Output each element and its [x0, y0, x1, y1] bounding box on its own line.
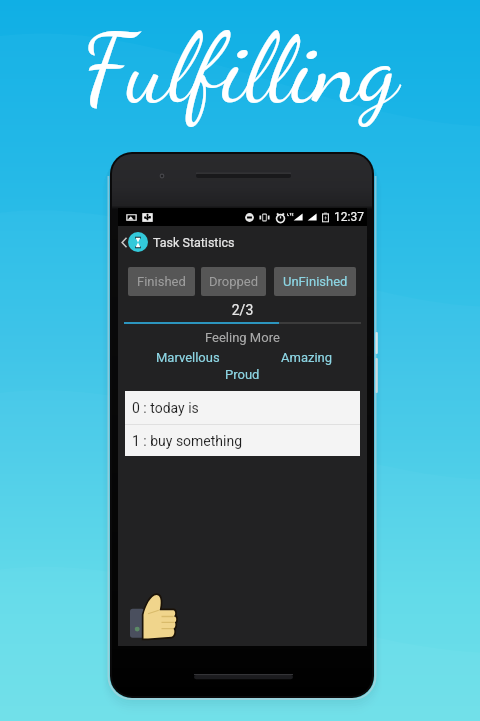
button[interactable]: 1 : buy something: [125, 425, 360, 456]
button[interactable]: Finished: [128, 267, 195, 296]
staticText: 2/3: [124, 302, 361, 318]
button[interactable]: Amazing: [281, 350, 333, 365]
button[interactable]: Back: [119, 233, 128, 251]
button[interactable]: Marvellous: [156, 350, 220, 365]
button[interactable]: Proud: [225, 367, 260, 382]
staticText: UnFinished: [283, 274, 348, 289]
staticText: Task Statistics: [153, 235, 235, 250]
button[interactable]: Dropped: [201, 267, 266, 296]
staticText: Feeling More: [205, 330, 280, 345]
staticText: 1 : buy something: [132, 433, 243, 449]
staticText: 12:37: [334, 210, 364, 224]
button[interactable]: Thumbs up: [130, 594, 175, 639]
staticText: 0 : today is: [132, 400, 199, 416]
staticText: Dropped: [209, 274, 259, 289]
staticText: Finished: [137, 274, 186, 289]
button[interactable]: 0 : today is: [125, 391, 360, 424]
button[interactable]: UnFinished: [274, 267, 356, 296]
staticText: Fulfilling: [82, 11, 399, 127]
